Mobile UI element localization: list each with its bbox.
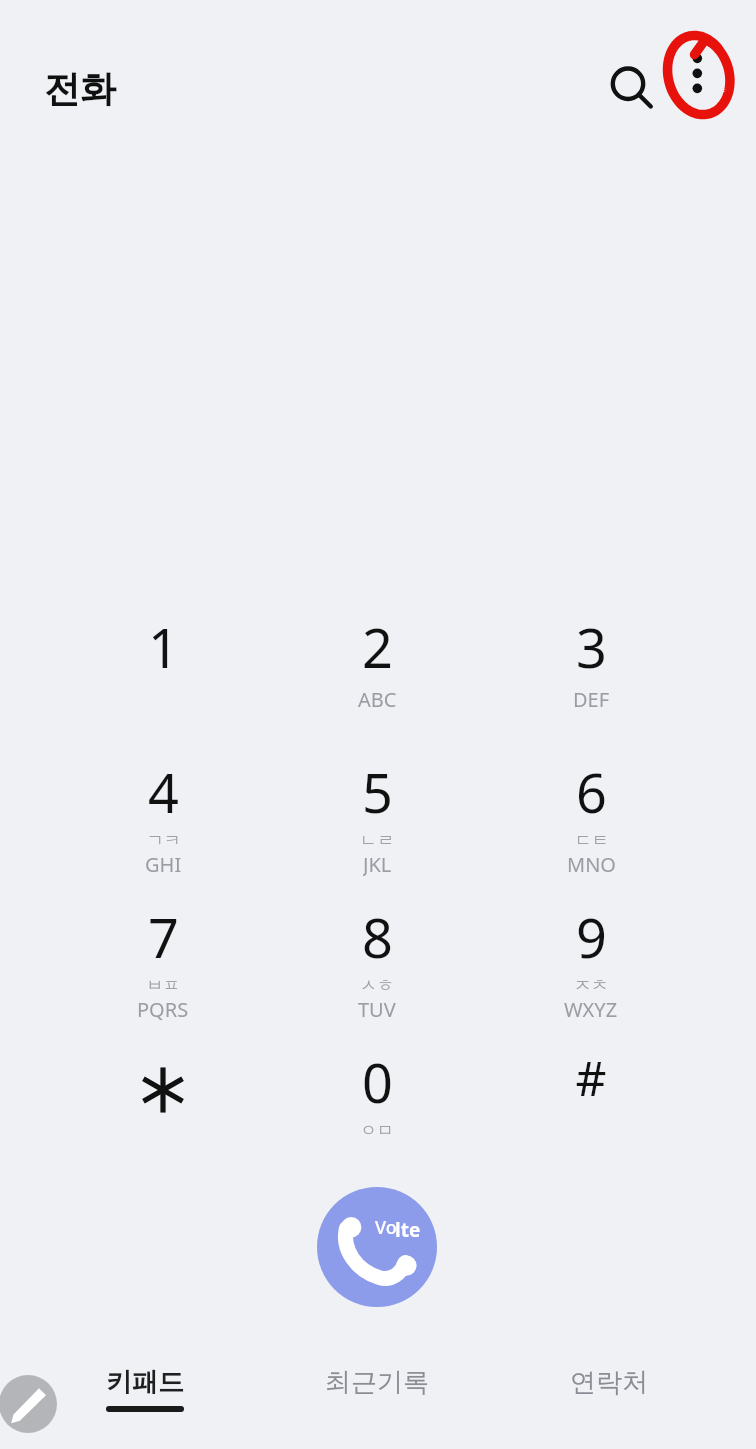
button[interactable]: 1 xyxy=(79,602,247,732)
button[interactable]: # xyxy=(507,1037,675,1167)
staticText: ㅅㅎ xyxy=(360,975,394,996)
staticText: 2 xyxy=(362,610,393,684)
staticText: 키패드 xyxy=(106,1366,184,1399)
staticText: DEF xyxy=(573,686,610,713)
button[interactable]: 0 xyxy=(293,1037,461,1167)
button[interactable]: 3 xyxy=(507,602,675,732)
staticText: # xyxy=(575,1045,607,1110)
button[interactable]: Search xyxy=(597,54,659,116)
button[interactable]: 최근기록 xyxy=(293,1366,461,1440)
staticText: 0 xyxy=(362,1045,393,1119)
staticText: 3 xyxy=(576,610,607,684)
staticText: 9 xyxy=(576,900,607,974)
button[interactable]: Edit xyxy=(0,1375,57,1433)
staticText: WXYZ xyxy=(564,996,618,1022)
staticText: 7 xyxy=(148,900,179,974)
button[interactable]: 키패드 xyxy=(61,1366,229,1440)
staticText: 1 xyxy=(148,610,179,684)
staticText: lte xyxy=(395,1217,421,1243)
staticText: ㄱㅋ xyxy=(147,830,181,851)
button[interactable]: 5 xyxy=(293,747,461,877)
staticText: 연락처 xyxy=(570,1366,648,1399)
button[interactable]: 연락처 xyxy=(525,1366,693,1440)
button[interactable]: Call xyxy=(317,1187,437,1307)
staticText: ㄴㄹ xyxy=(360,830,394,851)
staticText: PQRS xyxy=(137,996,189,1022)
button[interactable] xyxy=(79,1037,247,1167)
button[interactable]: 6 xyxy=(507,747,675,877)
staticText: 5 xyxy=(362,755,393,829)
staticText: 최근기록 xyxy=(325,1366,429,1399)
staticText: ㅂㅍ xyxy=(146,975,180,996)
staticText: 4 xyxy=(148,755,179,829)
staticText: ㄷㅌ xyxy=(575,830,609,851)
button[interactable]: 4 xyxy=(79,747,247,877)
staticText: Vo xyxy=(375,1215,397,1240)
staticText: GHI xyxy=(145,851,182,877)
button[interactable]: 7 xyxy=(79,892,247,1022)
staticText: 6 xyxy=(576,755,607,829)
staticText: JKL xyxy=(363,851,392,877)
staticText: MNO xyxy=(567,851,616,877)
button[interactable]: More options xyxy=(664,32,732,120)
button[interactable]: 2 xyxy=(293,602,461,732)
staticText: TUV xyxy=(358,996,396,1022)
button[interactable]: 8 xyxy=(293,892,461,1022)
staticText: ㅈㅊ xyxy=(574,975,608,996)
button[interactable]: 9 xyxy=(507,892,675,1022)
staticText: 8 xyxy=(362,900,393,974)
staticText: ㅇㅁ xyxy=(360,1120,394,1141)
staticText: 전화 xyxy=(44,66,116,111)
staticText: ABC xyxy=(358,686,397,713)
